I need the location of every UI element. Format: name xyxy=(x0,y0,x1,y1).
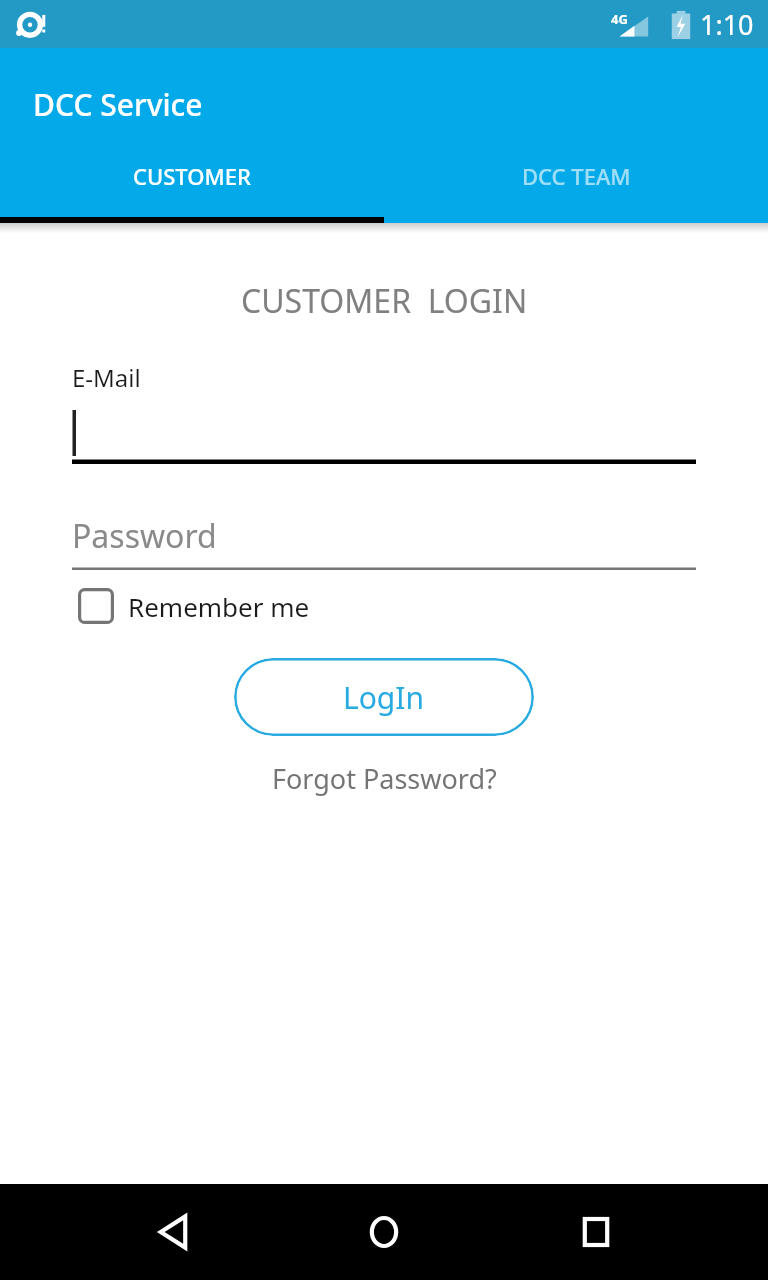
button[interactable]: Forgot Password? xyxy=(262,756,507,801)
button[interactable]: DCC TEAM xyxy=(384,161,768,191)
staticText: Remember me xyxy=(128,589,310,624)
button[interactable] xyxy=(72,408,696,464)
button[interactable]: Password xyxy=(72,514,696,570)
staticText: Password xyxy=(72,514,217,558)
staticText: CUSTOMER LOGIN xyxy=(241,279,528,323)
staticText: 4G xyxy=(611,10,628,28)
staticText: 1:10 xyxy=(700,6,754,43)
button[interactable]: LogIn xyxy=(234,658,534,736)
staticText: Forgot Password? xyxy=(272,760,497,797)
staticText: DCC TEAM xyxy=(522,161,631,191)
button[interactable]: CUSTOMER xyxy=(0,161,384,191)
staticText: DCC Service xyxy=(33,84,203,125)
staticText: CUSTOMER xyxy=(133,161,251,191)
staticText: LogIn xyxy=(343,677,425,718)
button[interactable]: Recent apps xyxy=(557,1193,635,1271)
button[interactable]: Back xyxy=(134,1193,212,1271)
staticText: E-Mail xyxy=(72,361,141,394)
button[interactable]: Remember me xyxy=(78,588,310,624)
button[interactable]: Home xyxy=(345,1193,423,1271)
